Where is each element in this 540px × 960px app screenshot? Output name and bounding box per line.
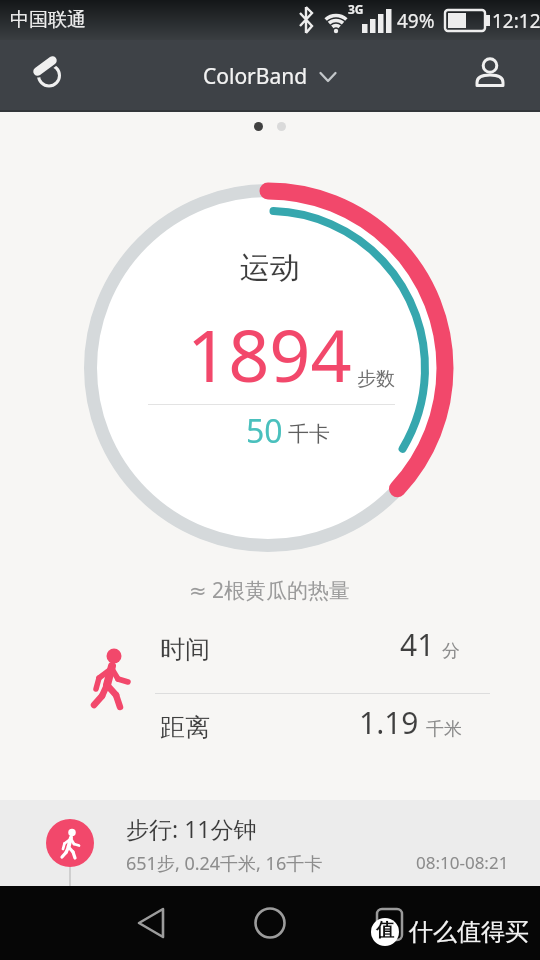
staticText: 分	[442, 640, 460, 663]
staticText: 什么值得买	[409, 917, 529, 947]
button[interactable]	[22, 54, 66, 98]
staticText: 时间	[160, 634, 210, 665]
staticText: ColorBand	[203, 62, 308, 91]
button[interactable]	[470, 56, 510, 96]
button[interactable]	[128, 900, 174, 946]
staticText: 千米	[426, 718, 462, 741]
button[interactable]: 时间	[160, 624, 460, 665]
staticText: 3G	[348, 1, 364, 17]
staticText: 08:10-08:21	[416, 851, 509, 874]
staticText: 651步, 0.24千米, 16千卡	[126, 851, 323, 876]
staticText: 12:12	[492, 8, 540, 34]
button[interactable]: ColorBand	[203, 62, 337, 91]
button[interactable]: 步行: 11分钟	[0, 800, 540, 886]
staticText: 1894	[187, 305, 352, 403]
staticText: 步数	[357, 367, 395, 391]
staticText: 中国联通	[10, 8, 86, 32]
staticText: 运动	[240, 249, 300, 287]
staticText: 1.19	[359, 702, 419, 743]
staticText: 49%	[397, 8, 435, 34]
staticText: 50	[246, 409, 283, 453]
button[interactable]	[247, 900, 293, 946]
staticText: 41	[400, 624, 435, 665]
staticText: ≈ 2根黄瓜的热量	[189, 576, 351, 605]
button[interactable]: 距离	[160, 702, 462, 743]
staticText: 步行: 11分钟	[126, 813, 257, 844]
staticText: 距离	[160, 712, 210, 743]
staticText: 千卡	[288, 421, 330, 447]
staticText: 值	[376, 919, 394, 942]
